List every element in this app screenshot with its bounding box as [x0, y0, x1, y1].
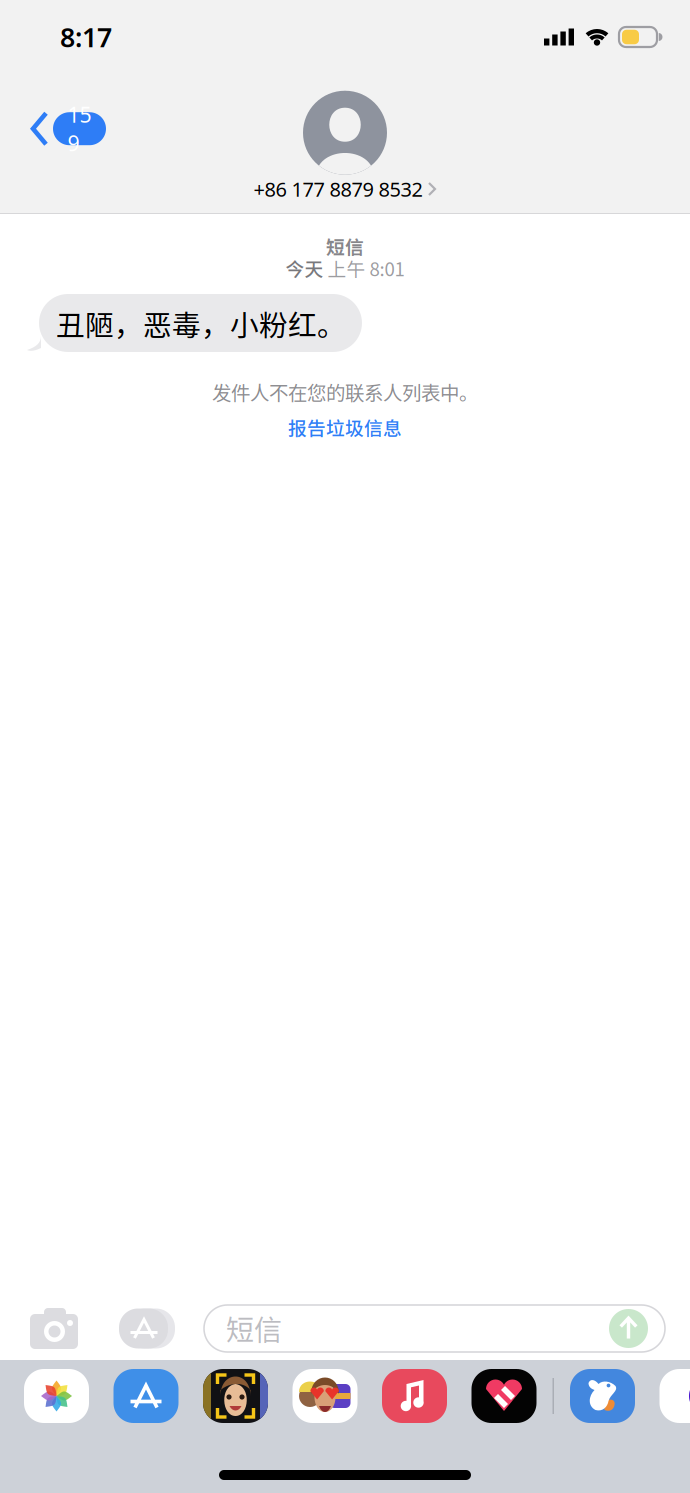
button[interactable]: Stickers [292, 1369, 357, 1423]
staticText: 短信 [226, 1308, 282, 1349]
button[interactable]: 159 [0, 103, 120, 155]
staticText: 上午 8:01 [327, 254, 404, 281]
staticText: 8:17 [60, 19, 112, 55]
staticText: +86 177 8879 8532 [253, 176, 422, 202]
button[interactable]: App Store [113, 1369, 178, 1423]
button[interactable]: Send [609, 1309, 665, 1348]
staticText: 报告垃圾信息 [288, 413, 402, 440]
button[interactable]: Music [382, 1369, 447, 1423]
button[interactable]: +86 177 8879 8532 [253, 176, 436, 202]
button[interactable]: Camera [30, 1308, 78, 1349]
button[interactable]: Health [471, 1369, 536, 1423]
staticText: 短信 [326, 232, 364, 259]
staticText: 159 [67, 100, 91, 157]
button[interactable]: Memoji [203, 1369, 268, 1423]
button[interactable]: 报告垃圾信息 [278, 414, 412, 440]
staticText: 丑陋，恶毒，小粉红。 [56, 303, 346, 344]
button[interactable]: Dolphin app [570, 1369, 635, 1423]
button[interactable]: Photos [24, 1369, 89, 1423]
button[interactable]: Apps [119, 1308, 175, 1348]
button[interactable]: App [659, 1369, 690, 1423]
staticText: 发件人不在您的联系人列表中。 [212, 378, 478, 406]
staticText: 今天 [285, 254, 327, 281]
